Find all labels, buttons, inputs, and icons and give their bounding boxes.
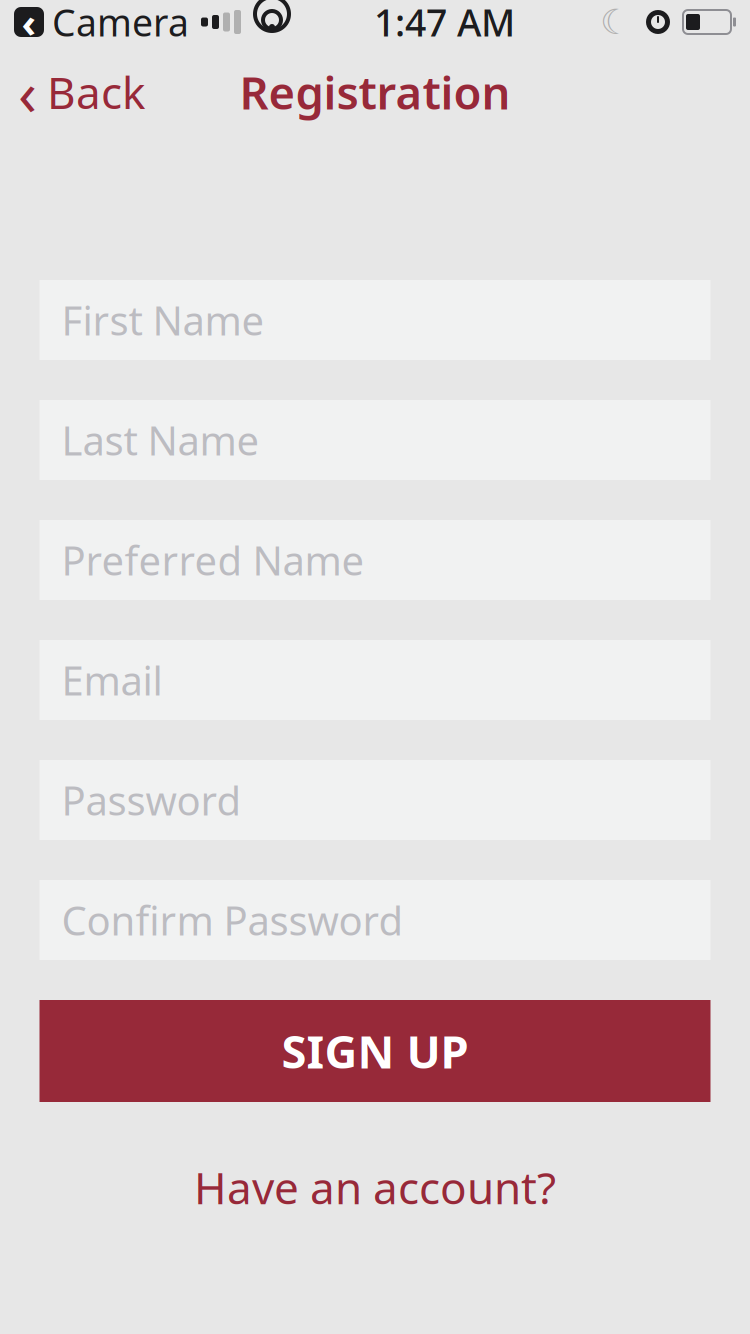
button[interactable]: ‹ — [0, 43, 163, 141]
staticText: 1:47 AM — [374, 0, 515, 47]
staticText: ☾ — [600, 2, 631, 42]
button[interactable]: First Name — [39, 280, 710, 360]
button[interactable]: Confirm Password — [39, 880, 710, 960]
button[interactable]: Password — [39, 760, 710, 840]
staticText: Confirm Password — [61, 893, 403, 946]
staticText: Last Name — [61, 413, 259, 466]
staticText: ‹ — [21, 0, 36, 48]
staticText: Back — [47, 63, 145, 121]
staticText: First Name — [61, 293, 264, 346]
staticText: Registration — [239, 62, 510, 122]
staticText: SIGN UP — [281, 1021, 468, 1081]
staticText: Email — [61, 653, 162, 706]
button[interactable]: SIGN UP — [39, 1000, 710, 1102]
staticText: Password — [61, 773, 241, 826]
staticText: Camera — [52, 0, 189, 47]
button[interactable]: Preferred Name — [39, 520, 710, 600]
staticText: ‹ — [18, 51, 37, 133]
button[interactable]: Email — [39, 640, 710, 720]
button[interactable]: Last Name — [39, 400, 710, 480]
button[interactable]: Have an account? — [170, 1146, 580, 1228]
staticText: Preferred Name — [61, 533, 364, 586]
staticText: Have an account? — [194, 1158, 556, 1216]
